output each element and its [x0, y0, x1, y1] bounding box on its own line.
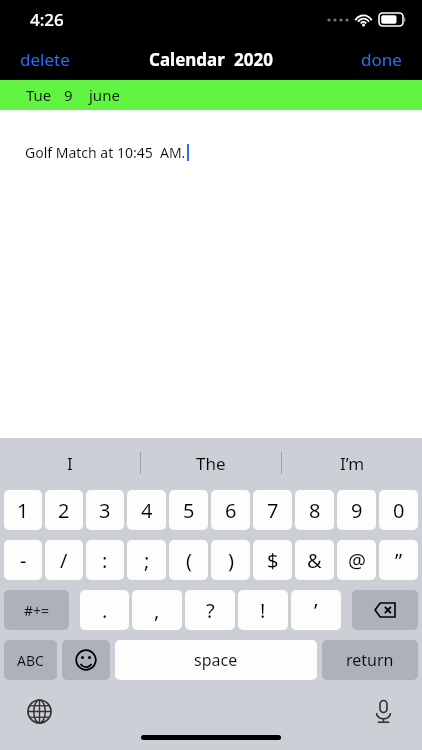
staticText: return [346, 649, 394, 671]
staticText: : [102, 547, 108, 574]
staticText: / [60, 547, 68, 574]
staticText: 1 [17, 497, 29, 524]
button[interactable]: Emoji [62, 640, 110, 680]
button[interactable]: delete [0, 40, 90, 79]
button[interactable]: , [132, 590, 182, 630]
staticText: The [196, 452, 226, 475]
button[interactable]: ABC [4, 640, 57, 680]
staticText: 6 [225, 497, 237, 524]
button[interactable]: . [80, 590, 129, 630]
staticText: Tue [26, 85, 52, 105]
staticText: Calendar [149, 48, 225, 71]
staticText: 9 [351, 497, 363, 524]
button[interactable]: ) [211, 540, 250, 580]
staticText: ’ [314, 597, 318, 624]
button[interactable]: : [86, 540, 124, 580]
button[interactable]: 7 [253, 490, 292, 530]
staticText: june [89, 85, 120, 105]
staticText: , [154, 597, 160, 624]
button[interactable]: ; [127, 540, 166, 580]
button[interactable]: Dictation [366, 694, 400, 728]
button[interactable]: ” [379, 540, 418, 580]
staticText: ! [260, 597, 266, 624]
button[interactable]: 1 [4, 490, 42, 530]
staticText: 0 [393, 497, 405, 524]
staticText: delete [20, 48, 70, 71]
button[interactable]: @ [337, 540, 376, 580]
button[interactable]: & [295, 540, 334, 580]
button[interactable]: ? [185, 590, 235, 630]
staticText: ” [395, 547, 403, 574]
staticText: ( [186, 547, 192, 574]
button[interactable]: Change keyboard [22, 694, 56, 728]
staticText: 2 [58, 497, 70, 524]
button[interactable]: I [0, 438, 140, 488]
staticText: & [307, 547, 322, 574]
button[interactable]: #+= [4, 590, 69, 630]
staticText: $ [267, 547, 279, 574]
button[interactable]: 4 [127, 490, 166, 530]
staticText: ) [228, 547, 234, 574]
button[interactable]: ! [238, 590, 288, 630]
button[interactable]: - [4, 540, 42, 580]
button[interactable]: 3 [86, 490, 124, 530]
staticText: ; [144, 547, 150, 574]
staticText: 4 [141, 497, 153, 524]
staticText: ABC [17, 651, 44, 670]
staticText: 2020 [234, 48, 273, 71]
button[interactable]: space [115, 640, 317, 680]
button[interactable]: done [341, 40, 422, 79]
staticText: 4:26 [30, 8, 64, 31]
staticText: 9 [64, 85, 73, 105]
staticText: ? [206, 597, 215, 624]
button[interactable]: 0 [379, 490, 418, 530]
staticText: I’m [340, 452, 365, 475]
button[interactable]: 5 [169, 490, 208, 530]
button[interactable]: return [322, 640, 418, 680]
staticText: I [67, 452, 73, 475]
staticText: @ [348, 547, 366, 574]
staticText: 5 [183, 497, 195, 524]
staticText: 3 [99, 497, 111, 524]
button[interactable]: ’ [291, 590, 341, 630]
button[interactable]: / [45, 540, 83, 580]
button[interactable]: $ [253, 540, 292, 580]
button[interactable]: 9 [337, 490, 376, 530]
button[interactable]: ( [169, 540, 208, 580]
button[interactable]: 6 [211, 490, 250, 530]
button[interactable]: 2 [45, 490, 83, 530]
button[interactable]: Backspace [352, 590, 418, 630]
staticText: done [361, 48, 402, 71]
staticText: #+= [24, 601, 50, 620]
staticText: Golf Match at 10:45 AM. [25, 143, 186, 162]
button[interactable]: The [141, 438, 281, 488]
button[interactable]: I’m [282, 438, 422, 488]
staticText: 8 [309, 497, 321, 524]
staticText: - [20, 547, 27, 574]
staticText: 7 [267, 497, 279, 524]
staticText: . [102, 597, 108, 624]
button[interactable]: 8 [295, 490, 334, 530]
staticText: space [194, 649, 238, 671]
